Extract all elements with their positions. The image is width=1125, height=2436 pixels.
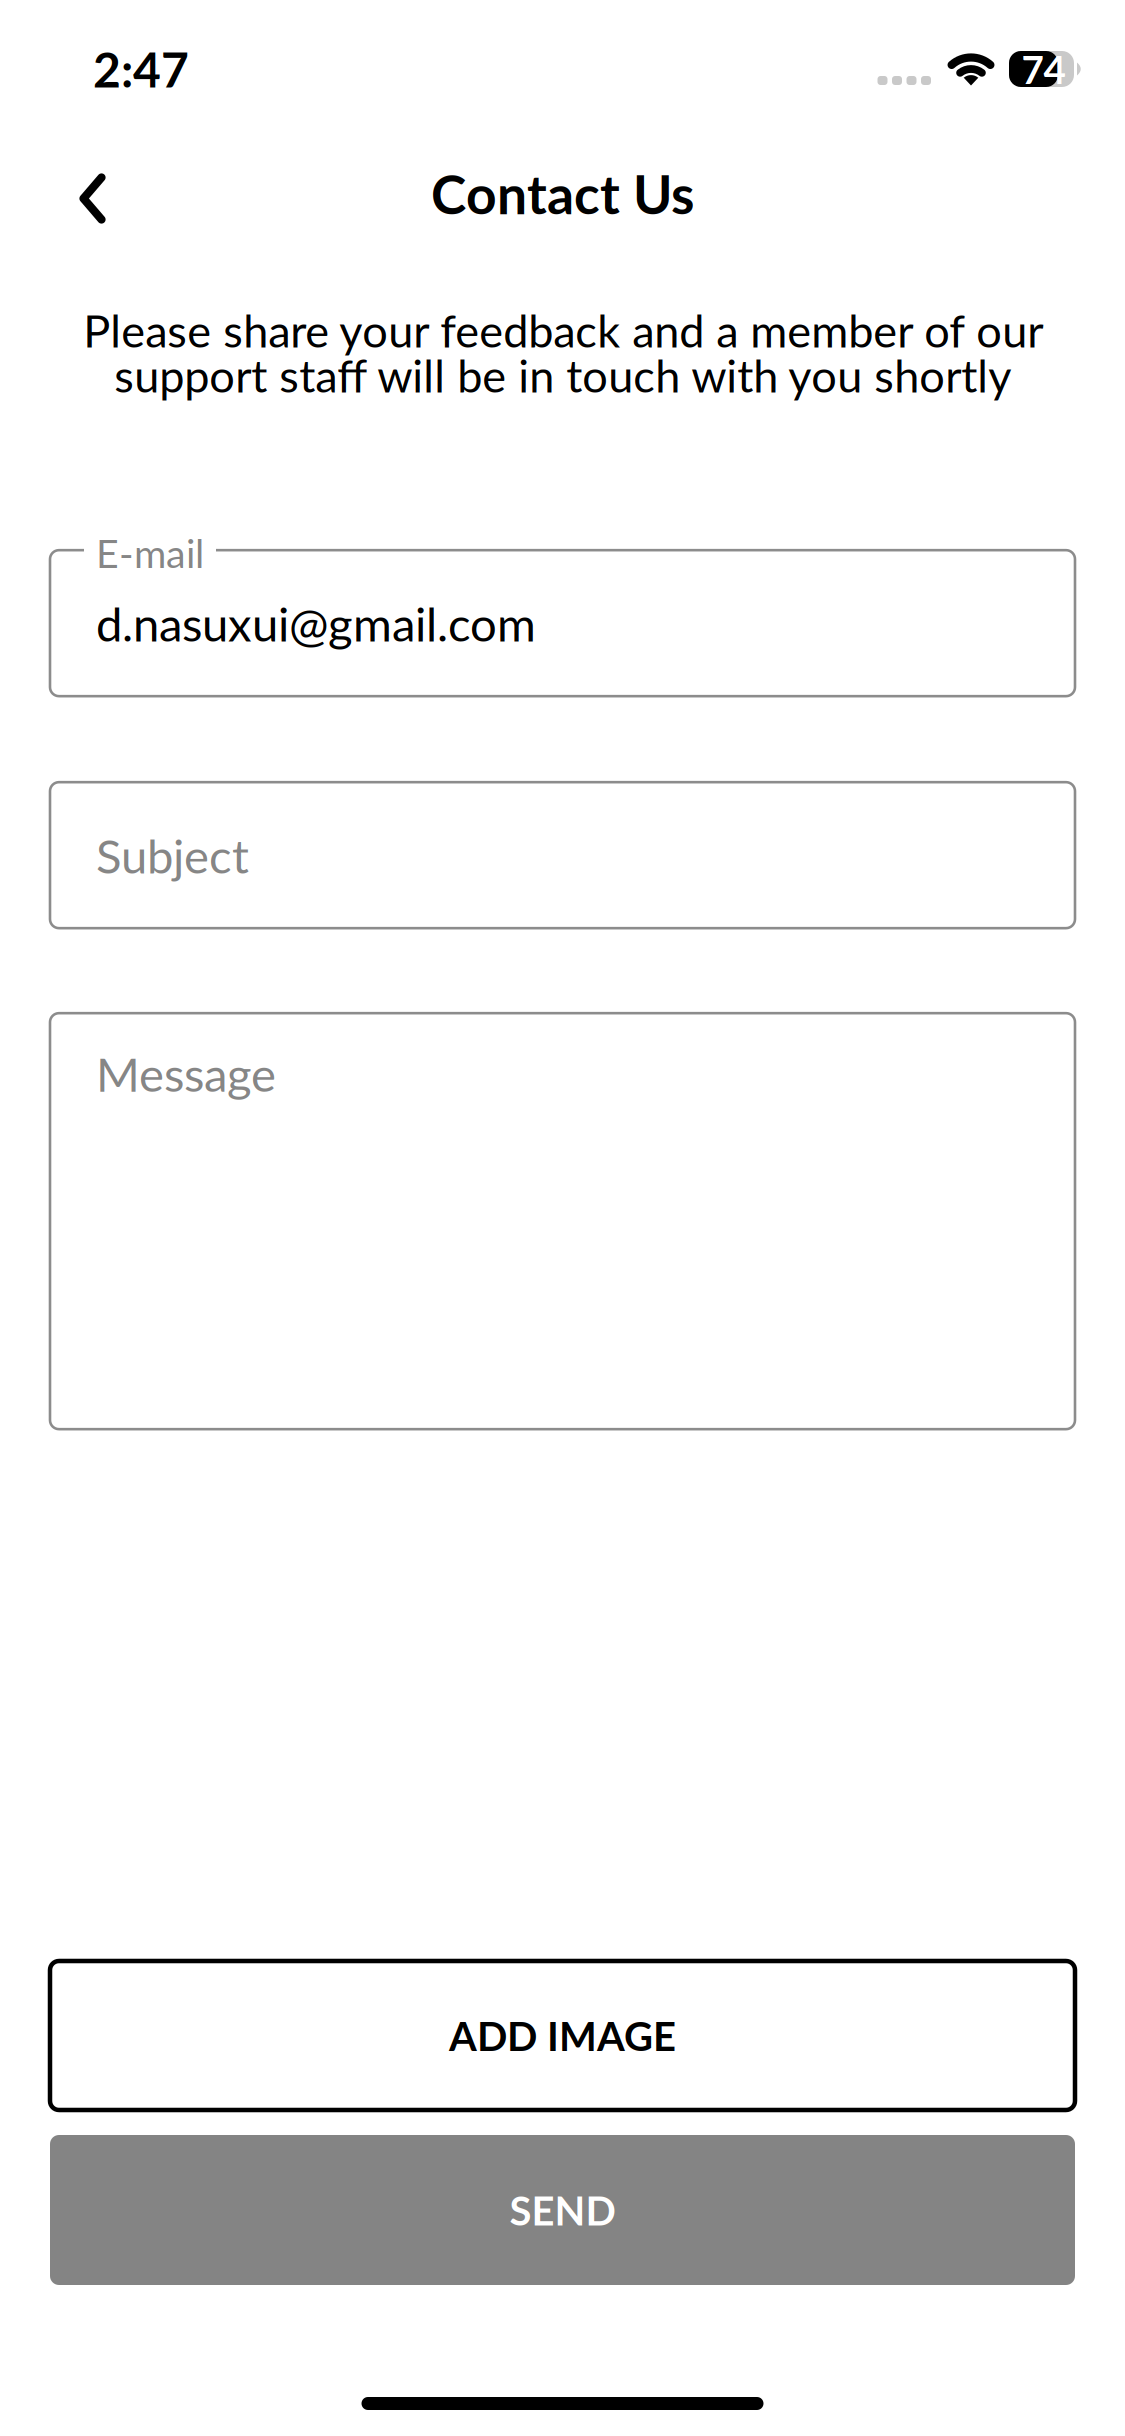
staticText: Message — [96, 1045, 276, 1102]
staticText: Please share your feedback and a member … — [83, 303, 1042, 402]
staticText: 74 — [1021, 46, 1065, 92]
staticText: d.nasuxui@gmail.com — [96, 595, 536, 651]
staticText: E-mail — [96, 529, 204, 576]
staticText: ADD IMAGE — [449, 2011, 676, 2059]
button[interactable]: ADD IMAGE — [0, 1961, 1125, 2110]
button[interactable]: Back — [0, 143, 148, 243]
staticText: Contact Us — [431, 161, 694, 225]
staticText: Subject — [96, 827, 249, 883]
staticText: SEND — [509, 2186, 615, 2234]
staticText: 2:47 — [93, 40, 189, 98]
button[interactable]: SEND — [0, 2135, 1125, 2285]
